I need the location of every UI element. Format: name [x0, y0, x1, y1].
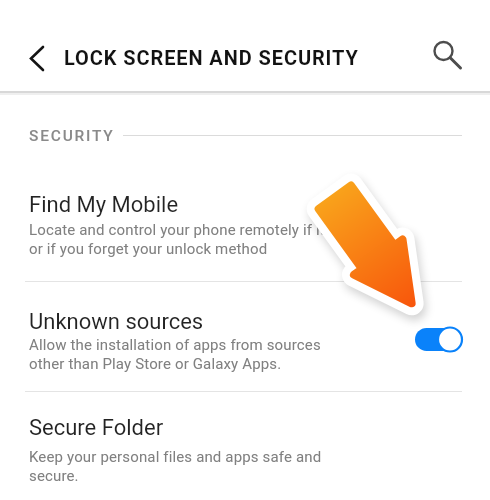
staticText: Secure Folder — [29, 415, 164, 441]
staticText: Keep your personal files and apps safe a… — [29, 448, 322, 485]
button[interactable] — [412, 323, 466, 356]
staticText: LOCK SCREEN AND SECURITY — [64, 46, 359, 69]
staticText: SECURITY — [29, 127, 115, 145]
staticText: Locate and control your phone remotely i… — [29, 221, 365, 258]
button[interactable]: Secure Folder — [0, 392, 490, 500]
staticText: Unknown sources — [29, 309, 204, 335]
button[interactable] — [14, 36, 58, 80]
staticText: Find My Mobile — [29, 192, 179, 218]
button[interactable] — [421, 29, 465, 73]
button[interactable]: Unknown sources — [0, 282, 490, 391]
staticText: Allow the installation of apps from sour… — [29, 336, 321, 373]
button[interactable]: Find My Mobile — [0, 170, 490, 281]
